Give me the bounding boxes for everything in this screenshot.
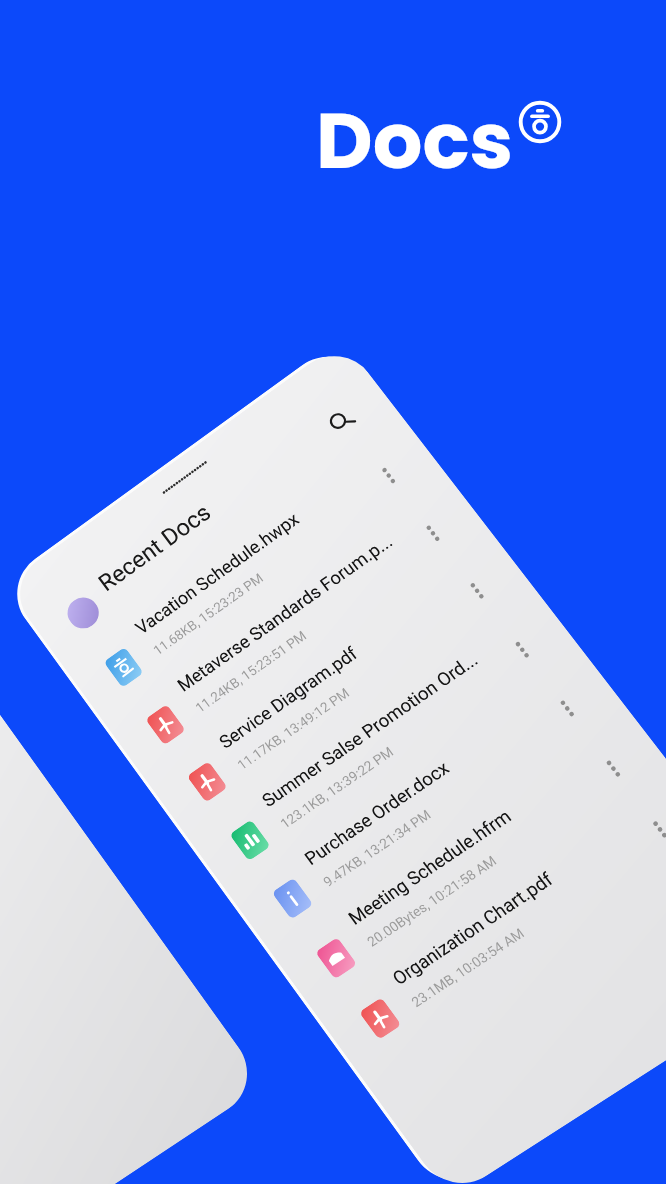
button[interactable]: More options: [352, 330, 384, 362]
staticText: Organization Chart.pdf: [84, 526, 340, 547]
button[interactable]: [20, 383, 400, 449]
button[interactable]: [20, 453, 400, 519]
staticText: Vacation Schedule.hwpx: [84, 108, 340, 129]
button[interactable]: [20, 314, 400, 380]
button[interactable]: More options: [352, 469, 384, 501]
button[interactable]: More options: [352, 121, 384, 153]
staticText: Docs: [316, 86, 514, 195]
staticText: Meeting Schedule.hfrm: [84, 456, 340, 477]
button[interactable]: More options: [352, 539, 384, 571]
button[interactable]: [20, 105, 400, 171]
staticText: 23.1MB, 10:03:54 AM: [85, 556, 209, 571]
button[interactable]: Docs: [316, 86, 563, 195]
staticText: 20.00Bytes, 10:21:58 AM: [85, 486, 229, 501]
button[interactable]: More options: [352, 399, 384, 431]
staticText: Purchase Order.docx: [84, 386, 340, 407]
button[interactable]: [20, 523, 400, 589]
